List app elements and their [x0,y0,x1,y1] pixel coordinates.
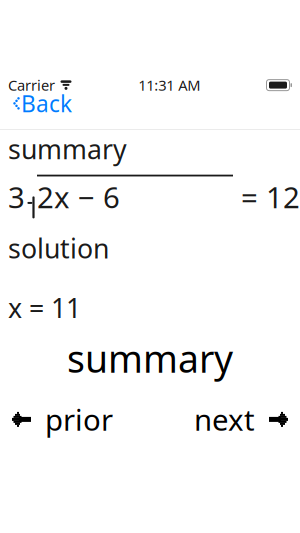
staticText: Back [21,88,72,118]
staticText: summary [67,333,233,383]
staticText: 3 [8,177,25,216]
staticText: summary [8,131,127,166]
button[interactable]: prior [0,395,113,444]
staticText: 11:31 AM [138,75,200,95]
staticText: prior [45,400,113,439]
staticText: x = 11 [8,290,81,325]
staticText: Carrier [8,75,55,95]
button[interactable]: Back [0,85,84,121]
staticText: 2x − 6 [37,177,120,216]
staticText: = 12 [233,177,300,216]
staticText: next [194,400,255,439]
button[interactable]: next [194,395,300,444]
staticText: solution [8,230,109,266]
